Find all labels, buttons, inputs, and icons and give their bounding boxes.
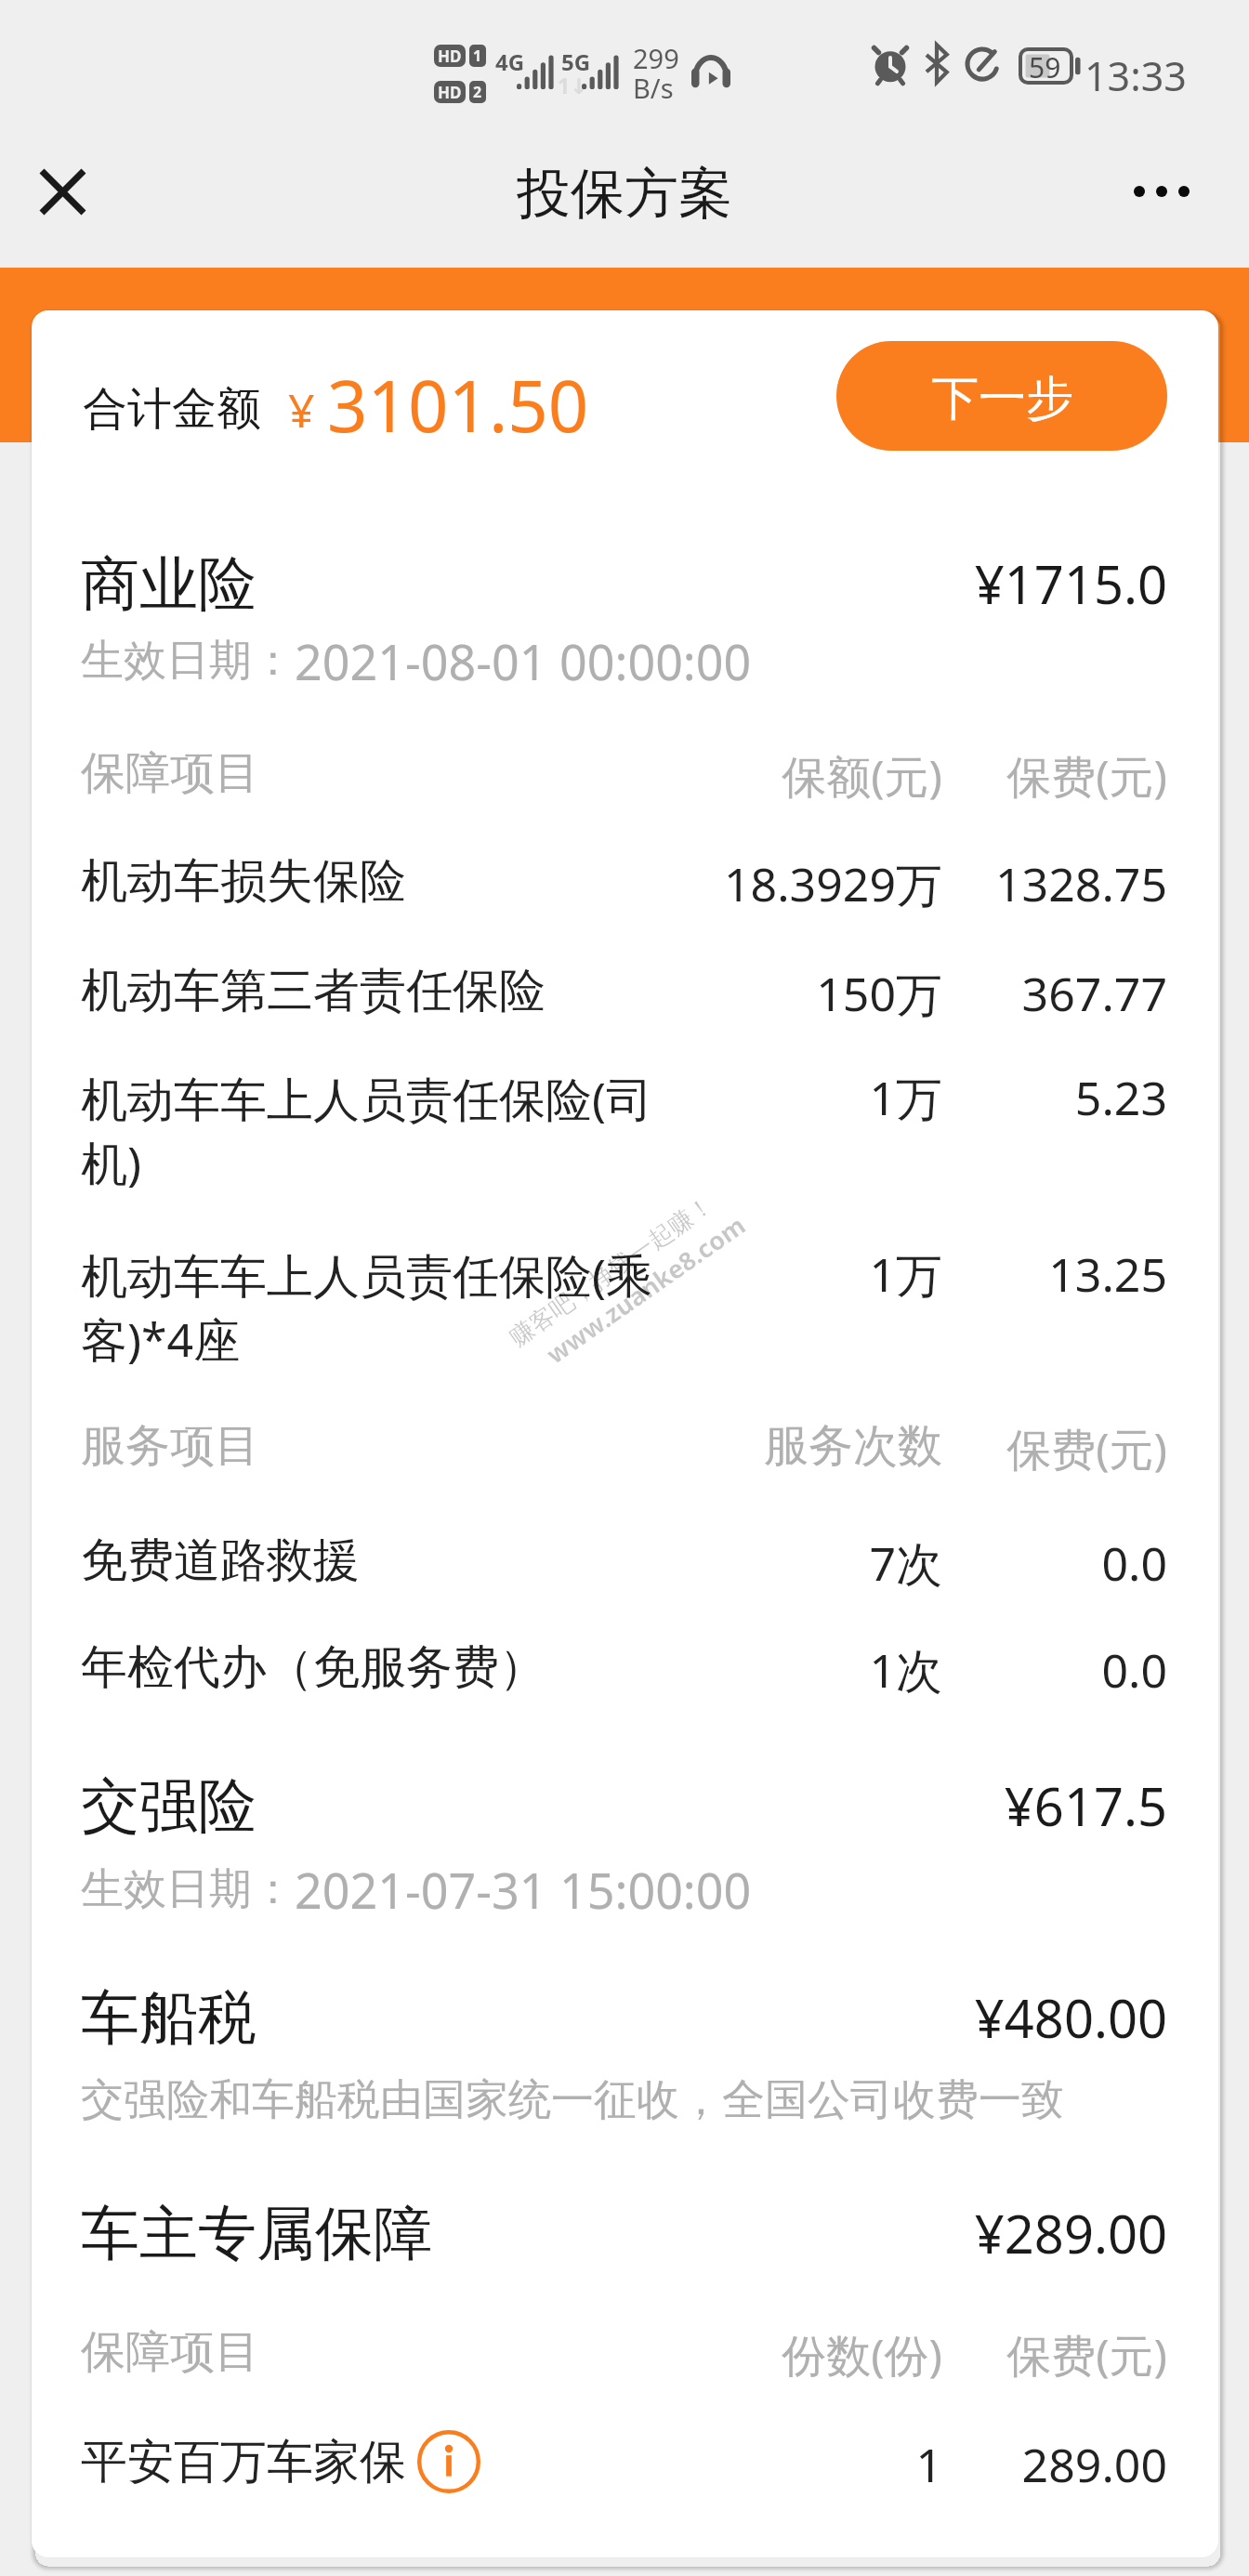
staticText: ¥	[288, 378, 315, 441]
staticText: 保障项目	[81, 745, 259, 801]
staticText: HD	[438, 82, 462, 103]
staticText: 4G	[495, 46, 525, 77]
staticText: 3101.50	[327, 357, 589, 453]
staticText: 车船税	[81, 1981, 256, 2055]
staticText: ¥617.5	[777, 1770, 1167, 1841]
staticText: 1328.75	[944, 852, 1167, 915]
staticText: ¥289.00	[777, 2198, 1167, 2268]
staticText: 299	[633, 40, 679, 76]
staticText: 59	[1029, 48, 1061, 86]
staticText: 0.0	[944, 1531, 1167, 1595]
staticText: www.zuanke8.com	[539, 1208, 752, 1371]
staticText: 保费(元)	[963, 745, 1167, 807]
staticText: ¥480.00	[777, 1982, 1167, 2053]
staticText: 平安百万车家保	[81, 2433, 406, 2491]
staticText: 367.77	[944, 962, 1167, 1025]
staticText: 13:33	[1085, 48, 1187, 103]
staticText: 年检代办（免服务费）	[81, 1638, 546, 1697]
staticText: 生效日期：	[81, 634, 295, 688]
staticText: 份数(份)	[701, 2324, 942, 2385]
staticText: 赚客吧，挣钱一起赚！	[504, 1189, 719, 1353]
staticText: 机动车损失保险	[81, 852, 406, 911]
staticText: 1万	[664, 1066, 942, 1129]
staticText: 服务次数	[701, 1418, 942, 1474]
staticText: 7次	[664, 1531, 942, 1595]
staticText: 生效日期：	[81, 1862, 295, 1916]
staticText: 18.3929万	[664, 852, 942, 915]
staticText: 1	[701, 2433, 942, 2496]
button[interactable]: Close	[20, 150, 104, 233]
staticText: 车主专属保障	[81, 2197, 432, 2270]
staticText: 交强险	[81, 1769, 256, 1843]
staticText: 2021-08-01 00:00:00	[295, 628, 752, 694]
staticText: 289.00	[944, 2433, 1167, 2496]
button[interactable]: Info	[417, 2430, 480, 2493]
staticText: 合计金额	[83, 381, 261, 437]
staticText: 下一步	[931, 369, 1073, 428]
staticText: 5.23	[944, 1066, 1167, 1129]
button[interactable]: 下一步	[836, 341, 1167, 451]
staticText: 保费(元)	[963, 1418, 1167, 1479]
staticText: 交强险和车船税由国家统一征收，全国公司收费一致	[81, 2073, 1064, 2127]
staticText: 1次	[664, 1638, 942, 1702]
staticText: 保障项目	[81, 2324, 259, 2380]
staticText: 13.25	[944, 1242, 1167, 1306]
staticText: HD	[438, 46, 462, 67]
staticText: 机动车车上人员责任保险(司机)	[81, 1067, 676, 1194]
staticText: 商业险	[81, 547, 256, 621]
button[interactable]: More options	[1120, 150, 1203, 233]
staticText: 0.0	[944, 1638, 1167, 1702]
staticText: 保额(元)	[701, 745, 942, 807]
staticText: B/s	[633, 70, 674, 106]
staticText: 保费(元)	[963, 2324, 1167, 2385]
staticText: 150万	[664, 962, 942, 1025]
staticText: 免费道路救援	[81, 1531, 360, 1590]
staticText: 5G	[561, 46, 591, 77]
staticText: 投保方案	[517, 160, 732, 228]
staticText: 2021-07-31 15:00:00	[295, 1857, 752, 1923]
staticText: 1	[473, 46, 482, 66]
staticText: 2	[473, 82, 482, 102]
staticText: ¥1715.0	[777, 548, 1167, 619]
staticText: 机动车第三者责任保险	[81, 962, 546, 1020]
staticText: 1↓	[558, 71, 588, 99]
staticText: 1万	[664, 1242, 942, 1306]
staticText: 服务项目	[81, 1418, 259, 1474]
staticText: 机动车车上人员责任保险(乘客)*4座	[81, 1243, 676, 1371]
